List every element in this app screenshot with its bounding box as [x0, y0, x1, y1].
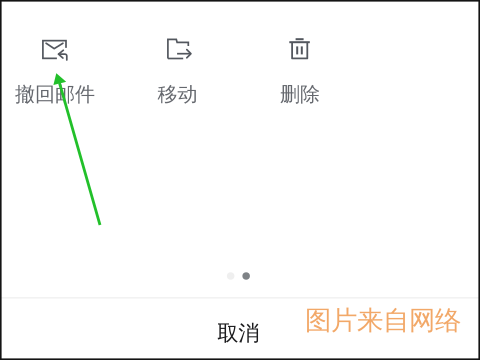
staticText: 撤回邮件	[15, 82, 95, 107]
button[interactable]: 撤回邮件	[0, 33, 111, 105]
staticText: 图片来自网络	[305, 304, 461, 337]
staticText: 移动	[157, 82, 197, 107]
button[interactable]: 移动	[121, 33, 233, 105]
staticText: 删除	[280, 82, 320, 107]
staticText: 取消	[217, 320, 259, 346]
button[interactable]: 删除	[244, 33, 356, 105]
button[interactable]: 取消	[0, 299, 480, 360]
